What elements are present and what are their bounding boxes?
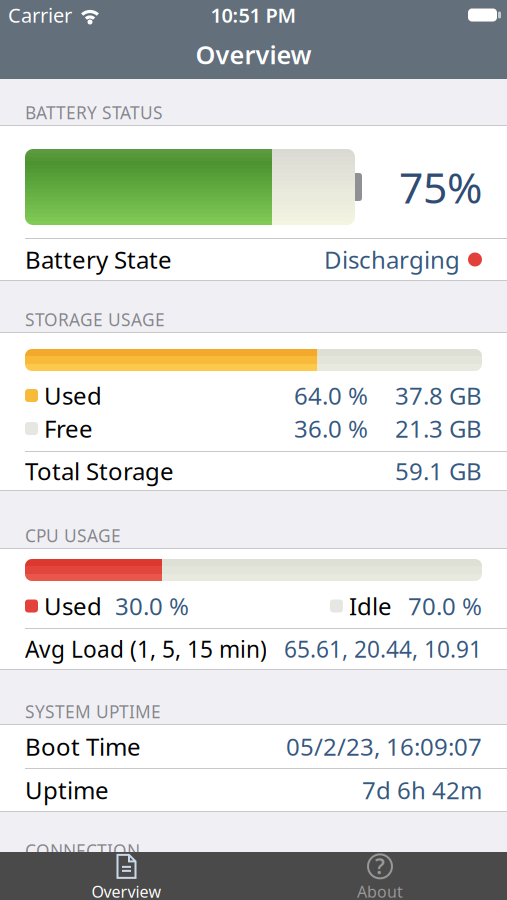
staticText: Used (44, 380, 102, 411)
staticText: STORAGE USAGE (25, 308, 165, 331)
staticText: Battery State (25, 244, 172, 275)
button[interactable]: ? (253, 852, 507, 900)
staticText: Free (44, 413, 93, 444)
staticText: 30.0 % (115, 590, 189, 622)
staticText: 59.1 GB (395, 455, 482, 487)
staticText: 70.0 % (408, 590, 482, 622)
staticText: BATTERY STATUS (25, 101, 163, 124)
staticText: 64.0 % (294, 380, 368, 411)
staticText: 36.0 % (294, 413, 368, 444)
staticText: 05/2/23, 16:09:07 (286, 731, 482, 762)
staticText: 65.61, 20.44, 10.91 (284, 634, 482, 664)
staticText: 37.8 GB (395, 380, 482, 411)
staticText: CPU USAGE (25, 524, 121, 547)
staticText: ? (375, 852, 385, 880)
staticText: Total Storage (25, 455, 174, 487)
staticText: Avg Load (1, 5, 15 min) (25, 634, 267, 664)
staticText: Discharging (324, 244, 460, 275)
staticText: Boot Time (25, 731, 141, 762)
staticText: About (357, 881, 403, 900)
staticText: 10:51 PM (210, 2, 296, 28)
button[interactable]: Overview (0, 852, 253, 900)
staticText: SYSTEM UPTIME (25, 700, 161, 723)
staticText: 21.3 GB (395, 413, 482, 444)
staticText: 75% (399, 159, 482, 215)
staticText: Overview (91, 881, 161, 900)
staticText: Carrier (8, 2, 72, 28)
staticText: Used (44, 590, 102, 622)
staticText: Uptime (25, 774, 109, 806)
staticText: CONNECTION (25, 839, 140, 862)
staticText: 7d 6h 42m (362, 774, 482, 806)
staticText: Overview (195, 38, 311, 71)
staticText: Idle (349, 590, 392, 622)
